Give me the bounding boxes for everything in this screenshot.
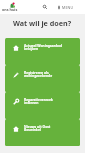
button[interactable]: Actueel Woningaanbod bekijken: [5, 38, 80, 65]
button[interactable]: Nieuws uit Oost Boswinkel: [5, 119, 80, 146]
button[interactable]: Search: [40, 2, 49, 11]
button[interactable]: Reparatieverzoek indienen: [5, 92, 80, 119]
staticText: Registreren als woningzoekende: [24, 70, 65, 78]
staticText: Actueel Woningaanbod bekijken: [24, 43, 65, 51]
staticText: Wat wil je doen?: [13, 18, 72, 28]
button[interactable]: Ons Huis home: [2, 0, 19, 11]
staticText: Reparatieverzoek indienen: [24, 97, 65, 105]
staticText: Nieuws uit Oost Boswinkel: [24, 124, 65, 132]
button[interactable]: MENU: [58, 2, 74, 12]
button[interactable]: Registreren als woningzoekende: [5, 65, 80, 92]
staticText: MENU: [62, 5, 74, 10]
staticText: ons huis: [2, 7, 18, 12]
